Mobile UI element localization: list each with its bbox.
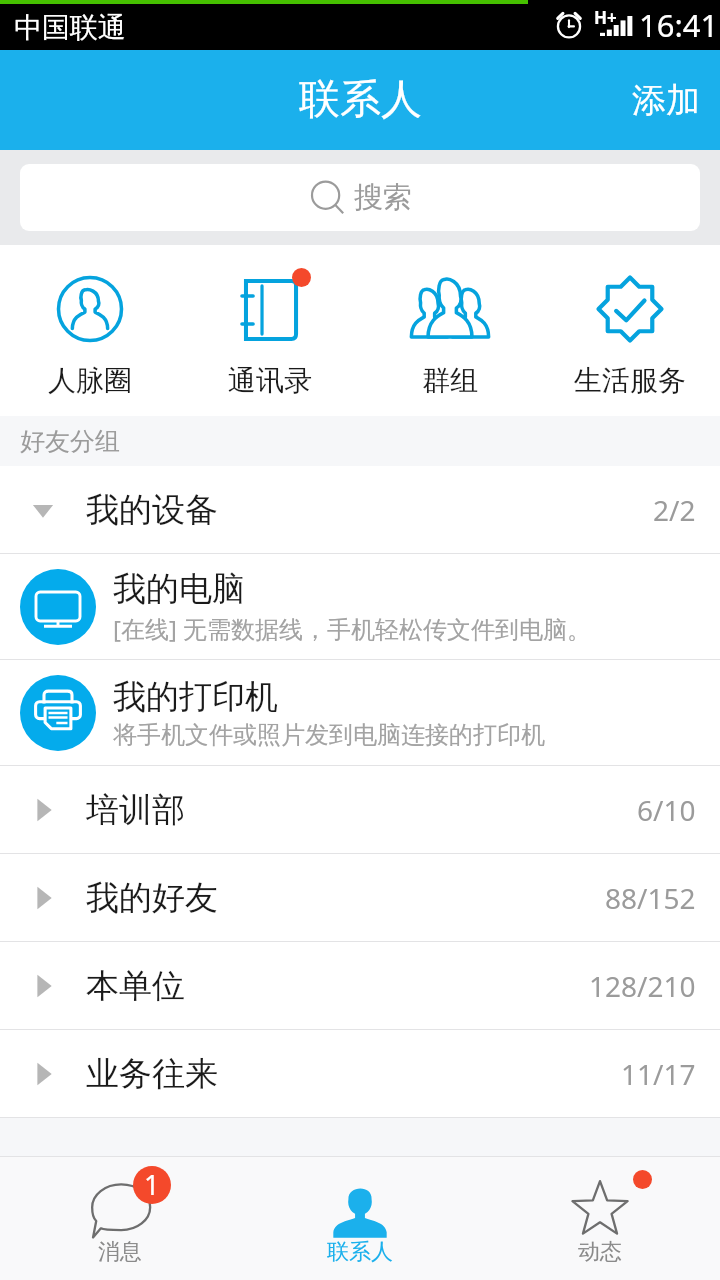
staticText: 消息 [98, 1238, 142, 1266]
button[interactable]: 业务往来 [0, 1030, 720, 1117]
staticText: 我的好友 [86, 877, 218, 919]
staticText: 动态 [578, 1238, 622, 1266]
button[interactable]: 搜索 [20, 164, 700, 231]
staticText: 我的电脑 [113, 568, 245, 610]
staticText: 我的设备 [86, 489, 218, 531]
button[interactable]: 我的设备 [0, 466, 720, 553]
button[interactable]: 人脉圈 [0, 245, 180, 416]
staticText: 6/10 [637, 791, 696, 829]
staticText: 培训部 [86, 789, 185, 831]
button[interactable]: 群组 [360, 245, 540, 416]
staticText: 16:41 [639, 4, 719, 46]
staticText: 128/210 [589, 967, 696, 1005]
staticText: 好友分组 [20, 426, 120, 457]
staticText: 添加 [632, 79, 700, 122]
staticText: 本单位 [86, 965, 185, 1007]
staticText: 搜索 [354, 179, 412, 216]
button[interactable]: 培训部 [0, 766, 720, 853]
button[interactable]: 添加 [612, 50, 720, 150]
button[interactable]: 联系人 [240, 1157, 480, 1280]
staticText: 我的打印机 [113, 676, 278, 718]
staticText: 88/152 [605, 879, 696, 917]
button[interactable]: 我的电脑 [0, 554, 720, 659]
button[interactable]: 生活服务 [540, 245, 720, 416]
button[interactable]: 通讯录 [180, 245, 360, 416]
staticText: 联系人 [299, 74, 422, 126]
staticText: 生活服务 [574, 363, 686, 398]
button[interactable]: 本单位 [0, 942, 720, 1029]
staticText: 2/2 [653, 491, 696, 529]
staticText: [在线] 无需数据线，手机轻松传文件到电脑。 [113, 612, 592, 645]
staticText: 人脉圈 [48, 363, 132, 398]
staticText: 联系人 [327, 1238, 393, 1266]
button[interactable]: 动态 [480, 1157, 720, 1280]
staticText: H+ [594, 6, 617, 29]
button[interactable]: 我的打印机 [0, 660, 720, 765]
staticText: 将手机文件或照片发到电脑连接的打印机 [113, 720, 545, 750]
button[interactable]: 我的好友 [0, 854, 720, 941]
staticText: 1 [144, 1166, 160, 1203]
staticText: 通讯录 [228, 363, 312, 398]
staticText: 业务往来 [86, 1053, 218, 1095]
staticText: 中国联通 [14, 10, 126, 45]
button[interactable]: 1 [0, 1157, 240, 1280]
staticText: 11/17 [621, 1055, 696, 1093]
staticText: 群组 [422, 363, 478, 398]
